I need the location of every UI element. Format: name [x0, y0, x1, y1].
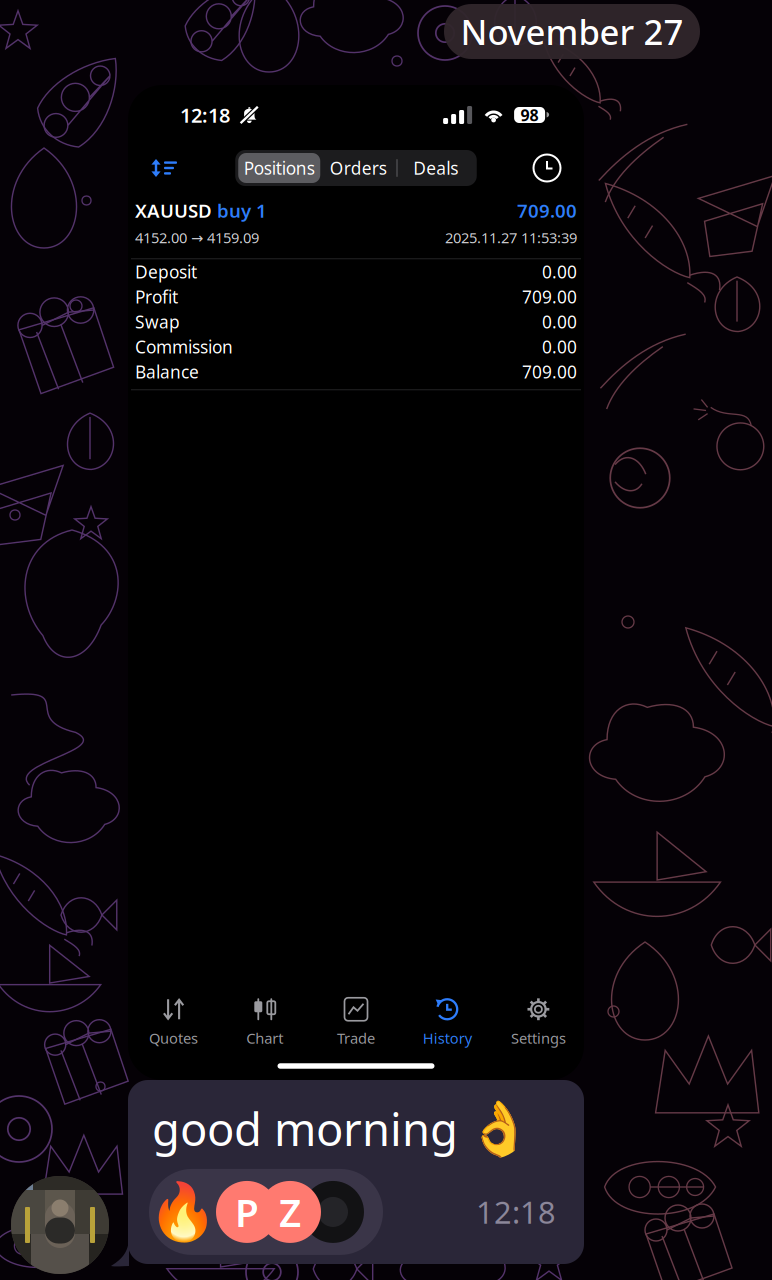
- button[interactable]: Positions: [238, 153, 320, 183]
- staticText: P: [235, 1186, 259, 1238]
- button[interactable]: Reactions: fire, 3 people: [149, 1169, 383, 1255]
- staticText: Balance: [135, 360, 199, 383]
- button[interactable]: Deals: [398, 153, 474, 183]
- staticText: good morning: [152, 1098, 458, 1159]
- button[interactable]: History: [532, 153, 562, 183]
- staticText: 0.00: [542, 260, 577, 283]
- staticText: 0.00: [542, 310, 577, 333]
- staticText: Z: [279, 1186, 301, 1238]
- staticText: Quotes: [149, 1028, 198, 1048]
- staticText: Chart: [246, 1028, 283, 1048]
- button[interactable]: Sender profile photo: [11, 1176, 109, 1274]
- staticText: Positions: [244, 156, 315, 179]
- staticText: 709.00: [517, 198, 577, 223]
- button[interactable]: Trade: [310, 988, 402, 1056]
- staticText: 709.00: [522, 285, 577, 308]
- staticText: 12:18: [180, 102, 230, 128]
- staticText: 2025.11.27 11:53:39: [445, 228, 577, 247]
- staticText: Deposit: [135, 260, 197, 283]
- staticText: 4152.00 → 4159.09: [135, 228, 259, 247]
- button[interactable]: Chart: [219, 988, 310, 1056]
- staticText: buy 1: [212, 198, 267, 223]
- button[interactable]: Sort positions: [148, 153, 180, 183]
- staticText: Settings: [511, 1028, 566, 1048]
- staticText: Swap: [135, 310, 180, 333]
- staticText: 98: [521, 104, 539, 126]
- button[interactable]: Orders: [320, 153, 396, 183]
- staticText: 🔥: [148, 1180, 218, 1244]
- staticText: History: [423, 1028, 472, 1048]
- staticText: Profit: [135, 285, 178, 308]
- staticText: Trade: [337, 1028, 375, 1048]
- staticText: 709.00: [522, 360, 577, 383]
- staticText: XAUUSD: [135, 198, 212, 223]
- staticText: 0.00: [542, 335, 577, 358]
- staticText: Orders: [330, 156, 387, 179]
- staticText: November 27: [460, 8, 683, 54]
- button[interactable]: Settings: [493, 988, 584, 1056]
- button[interactable]: Quotes: [128, 988, 219, 1056]
- staticText: 12:18: [476, 1192, 556, 1232]
- staticText: 👌: [466, 1098, 532, 1159]
- staticText: Deals: [413, 156, 458, 179]
- staticText: Commission: [135, 335, 233, 358]
- button[interactable]: History: [402, 988, 493, 1056]
- button[interactable]: XAUUSD: [128, 191, 584, 258]
